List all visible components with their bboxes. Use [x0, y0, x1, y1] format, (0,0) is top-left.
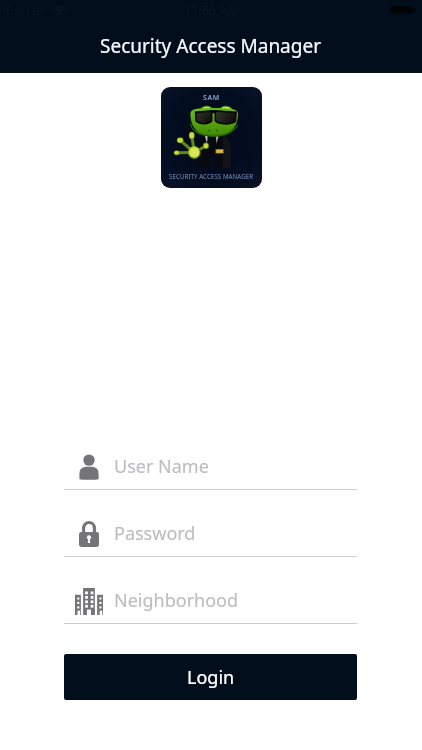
- other: SAM Security Access Manager logo: [161, 87, 262, 188]
- button[interactable]: Neighborhood: [64, 578, 357, 624]
- staticText: SAM: [203, 93, 220, 103]
- staticText: Password: [114, 521, 196, 546]
- button[interactable]: User Name: [64, 444, 357, 490]
- staticText: Security Access Manager: [100, 33, 322, 59]
- staticText: SECURITY ACCESS MANAGER: [169, 172, 254, 180]
- staticText: Neighborhood: [114, 588, 239, 613]
- button[interactable]: Password: [64, 511, 357, 557]
- staticText: Login: [187, 665, 235, 690]
- staticText: User Name: [114, 454, 209, 479]
- button[interactable]: Login: [64, 654, 357, 700]
